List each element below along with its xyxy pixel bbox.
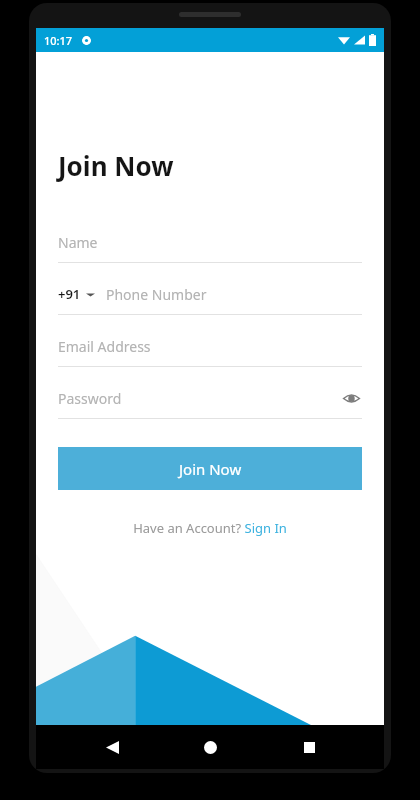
staticText: Join Now	[58, 148, 174, 183]
staticText: Email Address	[58, 337, 151, 356]
staticText: Name	[58, 233, 98, 252]
staticText: Have an Account? Sign In	[133, 519, 287, 537]
button[interactable]: +91	[58, 281, 362, 315]
button[interactable]: Name	[58, 229, 362, 263]
button[interactable]: Have an Account? Sign In	[127, 516, 293, 540]
staticText: Phone Number	[106, 285, 207, 304]
button[interactable]: Join Now	[58, 447, 362, 490]
staticText: +91	[58, 285, 81, 303]
button[interactable]: Show password	[340, 387, 362, 409]
staticText: 10:17	[44, 33, 73, 48]
button[interactable]: Back	[89, 725, 135, 769]
button[interactable]: Password	[58, 385, 362, 419]
button[interactable]: Recent apps	[286, 725, 332, 769]
staticText: Password	[58, 389, 122, 408]
button[interactable]: Home	[187, 725, 233, 769]
button[interactable]: Email Address	[58, 333, 362, 367]
staticText: Join Now	[179, 459, 242, 479]
